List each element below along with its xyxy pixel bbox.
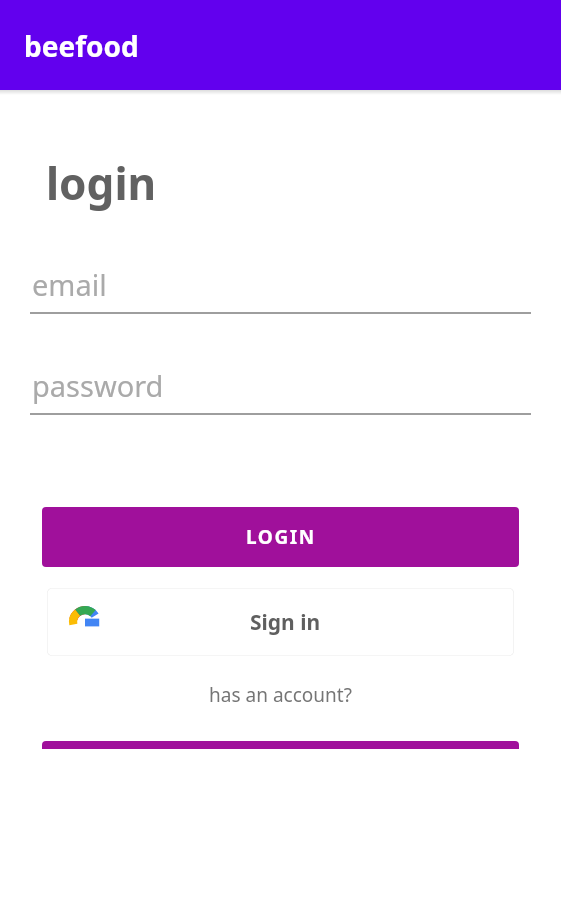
button[interactable]: password: [30, 366, 531, 415]
button[interactable]: has an account?: [24, 682, 537, 708]
button[interactable]: [42, 741, 519, 749]
staticText: email: [32, 265, 107, 304]
staticText: Sign in: [250, 608, 321, 637]
button[interactable]: LOGIN: [42, 507, 519, 567]
staticText: login: [46, 153, 157, 213]
button[interactable]: email: [30, 265, 531, 314]
staticText: password: [32, 366, 164, 405]
staticText: LOGIN: [246, 524, 316, 550]
staticText: beefood: [24, 27, 139, 65]
button[interactable]: Sign in: [47, 588, 514, 656]
staticText: has an account?: [209, 682, 352, 708]
